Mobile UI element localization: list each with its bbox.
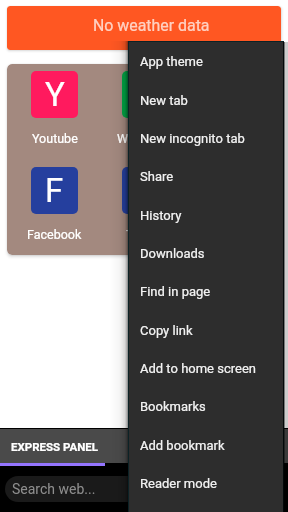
button[interactable]: Add to home screen (129, 349, 283, 387)
staticText: Amazon (213, 131, 260, 146)
staticText: Add to home screen (140, 361, 256, 376)
staticText: F (45, 171, 64, 210)
staticText: History (140, 208, 182, 223)
button[interactable]: EXPRESS PANEL (0, 429, 288, 463)
staticText: Twitter (126, 227, 165, 242)
staticText: Reader mode (140, 476, 217, 491)
staticText: Share (140, 169, 174, 184)
button[interactable]: Copy link (129, 311, 283, 349)
button[interactable]: Y (9, 71, 100, 146)
staticText: Facebook (27, 227, 82, 242)
staticText: New incognito tab (140, 131, 245, 146)
button[interactable]: Reader mode (129, 464, 283, 502)
button[interactable]: App theme (129, 42, 283, 80)
staticText: Bookmarks (140, 399, 206, 414)
button[interactable]: New incognito tab (129, 119, 283, 157)
staticText: Downloads (140, 246, 205, 261)
staticText: W (131, 75, 161, 114)
button[interactable]: Find in page (129, 272, 283, 310)
button[interactable]: History (129, 196, 283, 234)
button[interactable]: Bookmarks (129, 387, 283, 425)
staticText: T (136, 171, 156, 210)
staticText: App theme (140, 54, 203, 69)
button[interactable]: Search web... (5, 476, 220, 502)
button[interactable]: New tab (129, 81, 283, 119)
staticText: EXPRESS PANEL (11, 440, 99, 453)
staticText: New tab (140, 93, 188, 108)
button[interactable]: W (100, 71, 191, 146)
staticText: Youtube (32, 131, 78, 146)
staticText: No weather data (93, 16, 210, 35)
staticText: Find in page (140, 284, 211, 299)
staticText: Add bookmark (140, 438, 225, 453)
button[interactable]: T (100, 167, 191, 242)
button[interactable]: A (191, 71, 281, 146)
button[interactable]: Share (129, 157, 283, 195)
button[interactable]: Downloads (129, 234, 283, 272)
button[interactable]: F (9, 167, 100, 242)
staticText: Y (45, 75, 65, 114)
staticText: Copy link (140, 323, 193, 338)
staticText: WhatsApp (117, 131, 175, 146)
button[interactable]: Add bookmark (129, 426, 283, 464)
staticText: Search web... (12, 481, 96, 497)
button[interactable]: No weather data (7, 6, 281, 50)
